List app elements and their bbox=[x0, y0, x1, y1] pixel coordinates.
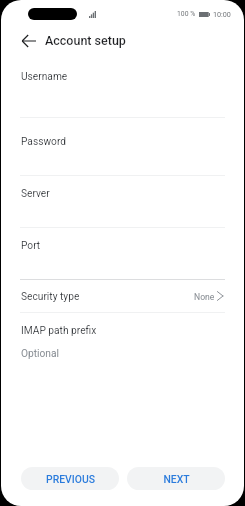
staticText: 100 % bbox=[177, 10, 196, 18]
staticText: Account setup bbox=[45, 33, 126, 48]
button[interactable]: Username bbox=[1, 60, 244, 117]
button[interactable]: Port bbox=[1, 228, 244, 279]
staticText: Port bbox=[21, 240, 41, 252]
staticText: Security type bbox=[21, 291, 80, 303]
button[interactable]: IMAP path prefix bbox=[1, 313, 244, 365]
button[interactable]: Server bbox=[1, 176, 244, 227]
staticText: Password bbox=[21, 136, 66, 148]
button[interactable]: Back bbox=[15, 27, 43, 55]
staticText: Username bbox=[21, 71, 68, 83]
button[interactable]: PREVIOUS bbox=[21, 467, 119, 490]
button[interactable]: NEXT bbox=[127, 467, 225, 490]
staticText: Optional bbox=[21, 348, 59, 360]
button[interactable]: Security type bbox=[1, 281, 244, 313]
staticText: Server bbox=[21, 188, 50, 200]
button[interactable]: Password bbox=[1, 118, 244, 175]
staticText: NEXT bbox=[163, 473, 190, 485]
staticText: 10:00 bbox=[213, 10, 231, 18]
staticText: PREVIOUS bbox=[46, 473, 95, 485]
staticText: None bbox=[194, 292, 215, 302]
staticText: IMAP path prefix bbox=[21, 325, 97, 337]
